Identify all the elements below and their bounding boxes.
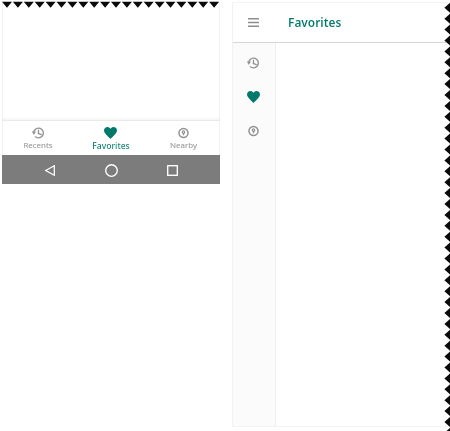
button[interactable]: Recents xyxy=(242,52,264,74)
button[interactable]: Recent apps xyxy=(158,156,186,184)
staticText: Favorites xyxy=(92,140,130,152)
button[interactable]: Nearby xyxy=(147,121,220,156)
button[interactable]: Home xyxy=(97,156,125,184)
staticText: Favorites xyxy=(288,14,342,30)
button[interactable]: Nearby xyxy=(242,120,264,142)
button[interactable]: Favorites xyxy=(242,86,264,108)
button[interactable]: Open navigation menu xyxy=(243,12,263,32)
staticText: Recents xyxy=(23,140,53,151)
staticText: Nearby xyxy=(170,140,197,151)
button[interactable]: Favorites xyxy=(74,121,147,156)
button[interactable]: Recents xyxy=(2,121,74,156)
button[interactable]: Back xyxy=(36,156,64,184)
